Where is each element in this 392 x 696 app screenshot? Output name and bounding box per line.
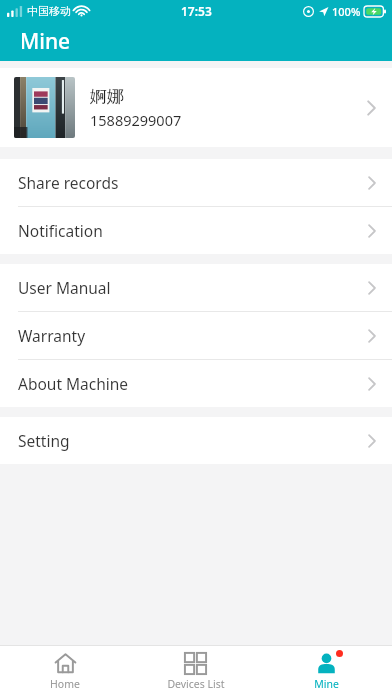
staticText: About Machine <box>18 373 368 394</box>
button[interactable]: Mine <box>261 646 392 696</box>
button[interactable]: About Machine <box>0 360 392 407</box>
button[interactable]: User Manual <box>0 264 392 311</box>
staticText: 17:53 <box>181 3 212 19</box>
staticText: Notification <box>18 220 368 241</box>
button[interactable]: Setting <box>0 417 392 464</box>
staticText: 中国移动 <box>27 4 71 18</box>
button[interactable]: Share records <box>0 159 392 206</box>
staticText: Mine <box>314 677 339 691</box>
staticText: Home <box>50 677 80 691</box>
staticText: Warranty <box>18 325 368 346</box>
button[interactable]: 婀娜 <box>0 68 392 147</box>
staticText: Mine <box>20 27 71 56</box>
button[interactable]: Notification <box>0 207 392 254</box>
staticText: Setting <box>18 430 368 451</box>
staticText: Devices List <box>167 677 225 691</box>
staticText: Share records <box>18 172 368 193</box>
button[interactable]: Warranty <box>0 312 392 359</box>
staticText: 婀娜 <box>90 86 124 107</box>
staticText: 100% <box>332 4 361 19</box>
button[interactable]: Devices List <box>130 646 261 696</box>
button[interactable]: Home <box>0 646 130 696</box>
staticText: 15889299007 <box>90 110 182 130</box>
staticText: User Manual <box>18 277 368 298</box>
